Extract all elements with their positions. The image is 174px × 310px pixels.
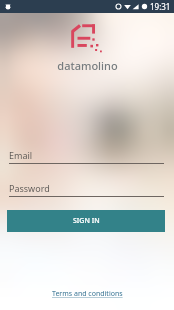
staticText: Password xyxy=(9,182,50,194)
staticText: Email xyxy=(9,149,33,161)
button[interactable]: Terms and conditions xyxy=(52,289,123,299)
staticText: datamolino xyxy=(57,58,118,73)
staticText: SIGN IN xyxy=(73,216,100,226)
button[interactable]: SIGN IN xyxy=(7,210,165,232)
staticText: 19:31 xyxy=(150,1,171,12)
